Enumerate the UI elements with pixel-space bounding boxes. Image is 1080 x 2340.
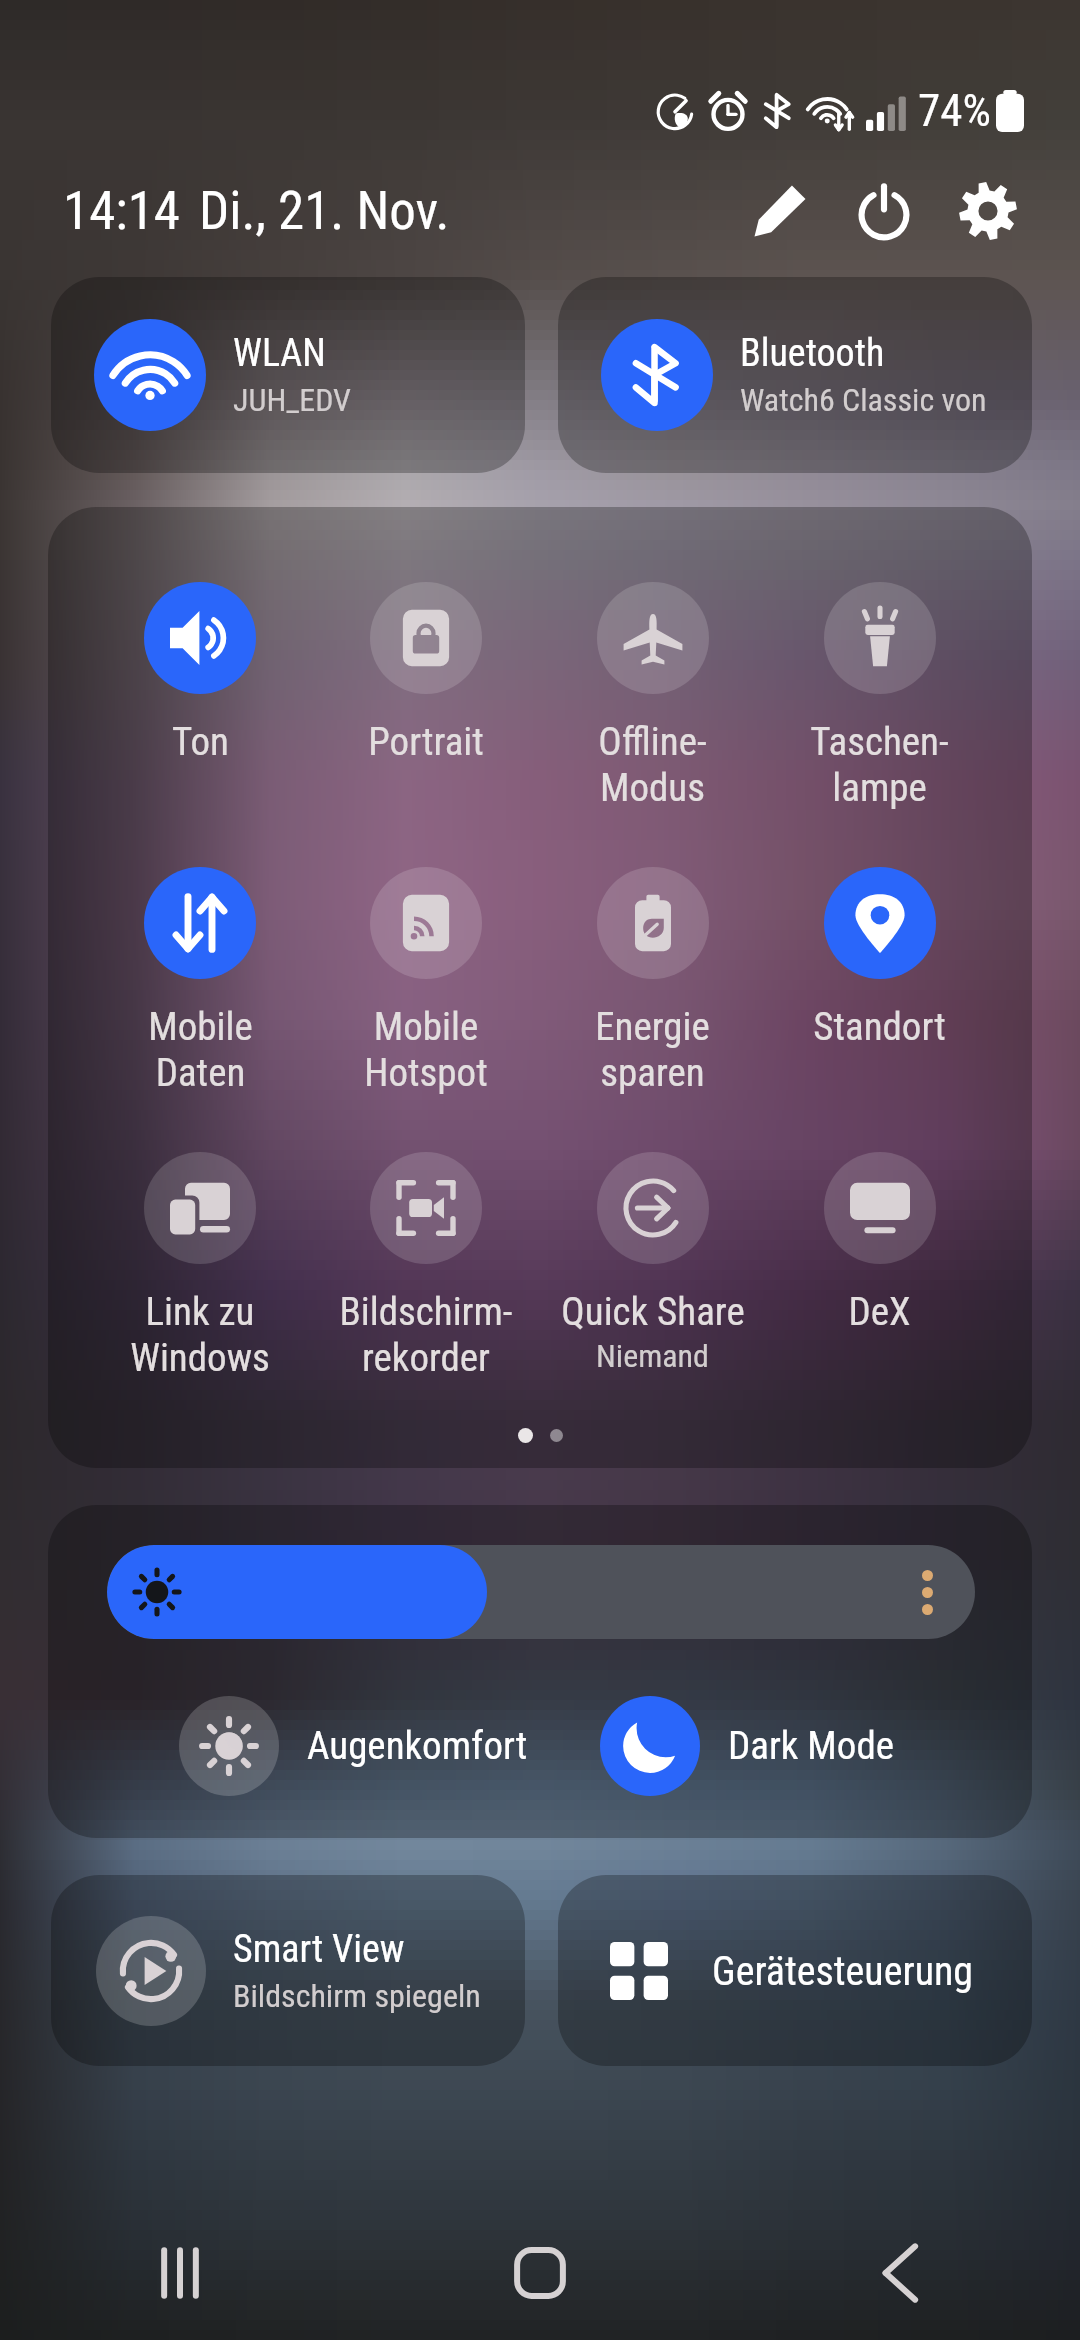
button[interactable]: Einstellungen (936, 180, 1040, 242)
staticText: Bildschirm- rekorder (339, 1289, 513, 1380)
staticText: Bildschirm spiegeln (233, 1977, 481, 2015)
staticText: Taschen- lampe (810, 719, 949, 810)
button[interactable]: Bildschirm- rekorder (313, 1152, 539, 1380)
button[interactable]: Offline- Modus (539, 582, 766, 810)
button[interactable]: Ausschalten (832, 180, 936, 242)
button[interactable]: Quick Share (539, 1152, 766, 1375)
staticText: Mobile Hotspot (364, 1004, 488, 1095)
staticText: DeX (848, 1289, 911, 1335)
button[interactable]: Startseite (360, 2213, 720, 2333)
button[interactable]: Letzte Apps (0, 2213, 360, 2333)
staticText: Offline- Modus (598, 719, 707, 810)
button[interactable]: Ton (87, 582, 313, 765)
staticText: Gerätesteuerung (712, 1948, 974, 1995)
staticText: Quick Share (561, 1289, 745, 1335)
button[interactable]: Bearbeiten (728, 180, 832, 242)
button[interactable]: WLAN (51, 277, 525, 473)
button[interactable]: Mobile Daten (87, 867, 313, 1095)
staticText: 14:14 (63, 180, 181, 242)
staticText: Mobile Daten (148, 1004, 253, 1095)
button[interactable]: DeX (766, 1152, 993, 1335)
staticText: Smart View (233, 1927, 405, 1972)
button[interactable]: Bluetooth (558, 277, 1032, 473)
button[interactable]: Standort (766, 867, 993, 1050)
button[interactable]: Zurück (720, 2213, 1080, 2333)
staticText: Di., 21. Nov. (199, 180, 450, 242)
button[interactable]: Gerätesteuerung (558, 1875, 1032, 2066)
button[interactable]: Dark Mode (600, 1695, 895, 1797)
button[interactable] (107, 1545, 975, 1639)
staticText: Dark Mode (728, 1723, 895, 1769)
staticText: 74% (918, 84, 991, 137)
staticText: Niemand (596, 1337, 709, 1375)
button[interactable]: Portrait (313, 582, 539, 765)
button[interactable]: Augenkomfort (179, 1695, 528, 1797)
staticText: WLAN (233, 331, 326, 376)
staticText: Portrait (368, 719, 484, 765)
staticText: Link zu Windows (130, 1289, 270, 1380)
staticText: JUH_EDV (233, 381, 351, 419)
staticText: Augenkomfort (307, 1723, 528, 1769)
button[interactable]: Smart View (51, 1875, 525, 2066)
staticText: Standort (813, 1004, 946, 1050)
button[interactable]: Energie sparen (539, 867, 766, 1095)
staticText: Bluetooth (740, 331, 885, 376)
button[interactable]: Taschen- lampe (766, 582, 993, 810)
button[interactable]: Mobile Hotspot (313, 867, 539, 1095)
staticText: Energie sparen (595, 1004, 710, 1095)
button[interactable]: Link zu Windows (87, 1152, 313, 1380)
staticText: Ton (172, 719, 229, 765)
staticText: Watch6 Classic von (740, 381, 987, 419)
